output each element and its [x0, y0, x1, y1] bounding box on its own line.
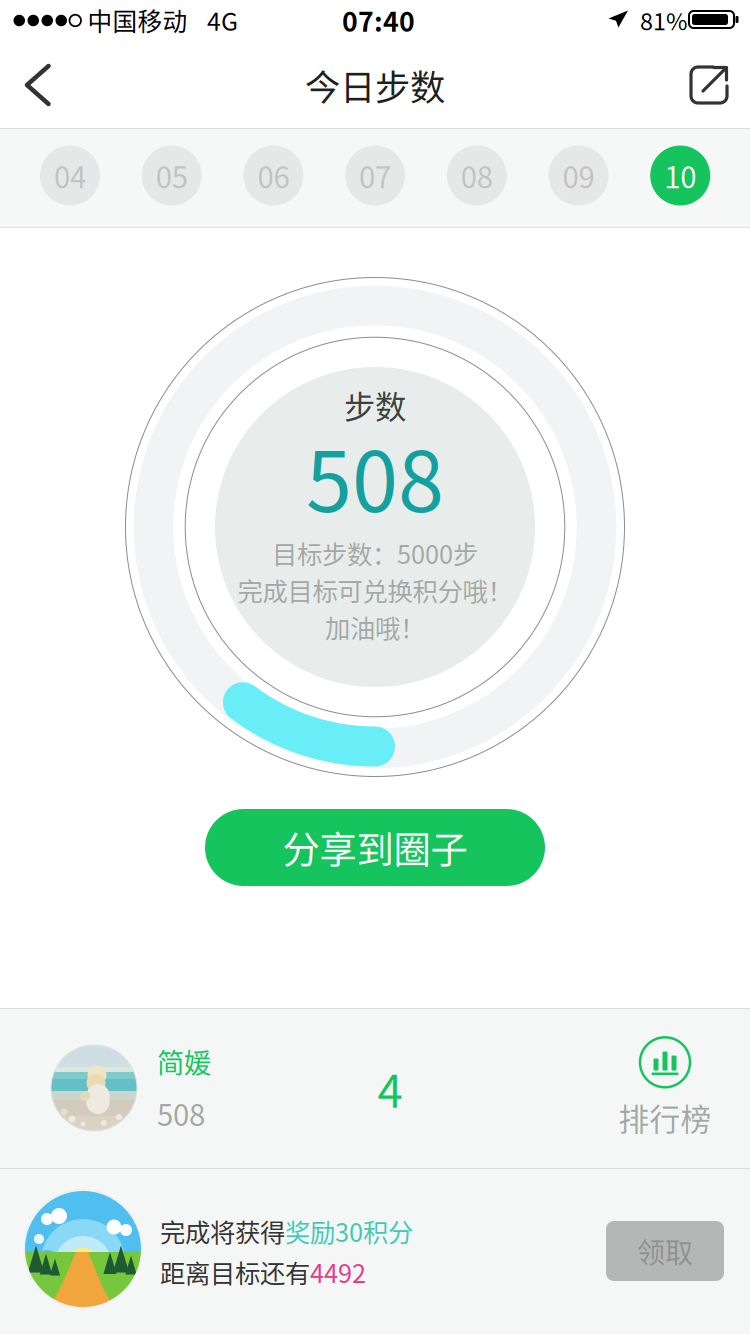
staticText: 06 — [257, 154, 289, 197]
staticText: 今日步数 — [305, 59, 445, 111]
staticText: 简媛 — [157, 1041, 211, 1081]
staticText: 距离目标还有 — [160, 1254, 310, 1290]
button[interactable]: 04 — [25, 126, 115, 225]
staticText: 4 — [377, 1055, 402, 1121]
staticText: 08 — [461, 154, 493, 197]
staticText: 508 — [157, 1092, 205, 1135]
button[interactable]: 分享到圈子 — [205, 809, 545, 886]
button[interactable]: 10 — [635, 126, 725, 225]
button[interactable]: 07 — [330, 126, 420, 225]
staticText: 目标步数：5000步 — [272, 535, 478, 571]
staticText: 完成目标可兑换积分哦！ — [237, 572, 512, 608]
staticText: 排行榜 — [618, 1095, 711, 1140]
button[interactable]: 06 — [228, 126, 318, 225]
button[interactable]: 08 — [432, 126, 522, 225]
staticText: 4G — [207, 2, 238, 38]
button[interactable]: 返回 — [0, 41, 76, 129]
staticText: 81% — [640, 3, 687, 37]
staticText: 分享到圈子 — [282, 820, 467, 875]
staticText: 05 — [156, 154, 188, 197]
button[interactable]: 简媛 — [0, 1008, 750, 1168]
staticText: 步数 — [344, 382, 406, 428]
staticText: 领取 — [637, 1231, 693, 1271]
staticText: 10 — [664, 154, 696, 197]
staticText: 完成将获得 — [160, 1213, 285, 1249]
staticText: 中国移动 — [87, 2, 187, 38]
button[interactable]: 09 — [533, 126, 623, 225]
staticText: 07:40 — [342, 1, 415, 39]
staticText: 4492 — [310, 1254, 366, 1290]
button[interactable]: 领取 — [606, 1221, 724, 1281]
staticText: 奖励30积分 — [285, 1213, 413, 1249]
staticText: 07 — [359, 154, 391, 197]
staticText: 04 — [54, 154, 86, 197]
staticText: 加油哦！ — [325, 609, 425, 645]
staticText: 508 — [306, 416, 444, 536]
staticText: 09 — [562, 154, 594, 197]
button[interactable]: 分享 — [668, 41, 750, 129]
button[interactable]: 05 — [127, 126, 217, 225]
